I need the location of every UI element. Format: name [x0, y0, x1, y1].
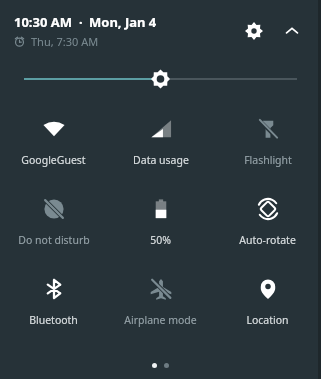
staticText: 50% — [150, 233, 171, 247]
button[interactable]: GoogleGuest — [0, 102, 107, 182]
staticText: Flashlight — [244, 153, 292, 167]
button[interactable]: Auto-rotate — [214, 182, 321, 262]
button[interactable]: 50% — [107, 182, 214, 262]
staticText: Location — [246, 313, 289, 327]
button[interactable]: Data usage — [107, 102, 214, 182]
button[interactable]: Location — [214, 262, 321, 342]
staticText: Airplane mode — [124, 313, 197, 327]
button[interactable]: Do not disturb — [0, 182, 107, 262]
button[interactable]: Flashlight — [214, 102, 321, 182]
button[interactable]: Airplane mode — [107, 262, 214, 342]
staticText: Thu, 7:30 AM — [31, 34, 99, 49]
staticText: Mon, Jan 4 — [89, 13, 157, 31]
button[interactable]: Brightness — [24, 62, 297, 96]
staticText: Do not disturb — [18, 233, 90, 247]
button[interactable]: Collapse — [273, 12, 311, 50]
staticText: Data usage — [133, 153, 189, 167]
staticText: · — [79, 13, 83, 31]
staticText: GoogleGuest — [21, 153, 86, 167]
staticText: 10:30 AM — [14, 13, 73, 31]
staticText: Bluetooth — [29, 313, 78, 327]
button[interactable]: Settings — [235, 12, 273, 50]
staticText: Auto-rotate — [239, 233, 296, 247]
button[interactable]: Bluetooth — [0, 262, 107, 342]
